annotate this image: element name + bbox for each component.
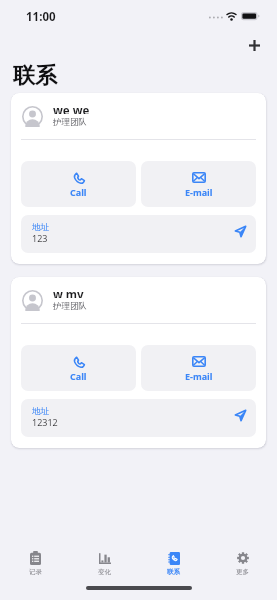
staticText: 联系 <box>13 62 57 90</box>
staticText: 地址 <box>32 406 49 416</box>
staticText: Call <box>70 370 87 382</box>
button[interactable]: Add contact <box>236 27 272 63</box>
button[interactable]: we we <box>11 93 266 139</box>
staticText: 护理团队 <box>53 117 87 128</box>
staticText: E-mail <box>185 186 213 198</box>
button[interactable]: 变化 <box>70 551 139 581</box>
staticText: 记录 <box>29 568 42 576</box>
button[interactable]: 地址 <box>21 215 256 253</box>
button[interactable]: Call <box>21 161 136 207</box>
staticText: 地址 <box>32 222 49 232</box>
staticText: 11:00 <box>26 9 56 25</box>
staticText: 12312 <box>32 416 58 428</box>
button[interactable]: w my <box>11 277 266 323</box>
button[interactable]: 地址 <box>21 399 256 437</box>
staticText: w my <box>53 287 84 298</box>
staticText: 联系 <box>167 568 180 576</box>
button[interactable]: E-mail <box>141 161 256 207</box>
staticText: 变化 <box>98 568 111 576</box>
button[interactable]: 更多 <box>208 551 277 581</box>
staticText: 更多 <box>236 568 249 576</box>
staticText: Call <box>70 186 87 198</box>
staticText: we we <box>53 103 90 114</box>
staticText: 护理团队 <box>53 301 87 312</box>
staticText: 123 <box>32 232 48 244</box>
button[interactable]: Call <box>21 345 136 391</box>
button[interactable]: 联系 <box>139 551 208 581</box>
button[interactable]: E-mail <box>141 345 256 391</box>
staticText: E-mail <box>185 370 213 382</box>
button[interactable]: 记录 <box>0 551 70 581</box>
